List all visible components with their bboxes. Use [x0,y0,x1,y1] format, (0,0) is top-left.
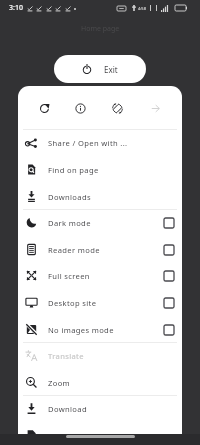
staticText: Translate [48,351,84,361]
button[interactable]: Reader mode [18,236,182,263]
button[interactable]: Full screen [18,262,182,289]
button[interactable]: Dark mode [18,209,182,236]
button[interactable]: Exit [54,55,146,83]
staticText: Download [48,404,87,414]
button[interactable]: Zoom [18,369,182,396]
button[interactable]: Rotate screen [99,86,136,129]
staticText: Reader mode [48,245,100,255]
staticText: Desktop site [48,298,97,308]
staticText: 4:58 [138,6,146,11]
button[interactable]: Translate [18,342,182,369]
staticText: Downloads [48,192,91,202]
button[interactable]: Desktop site [18,289,182,316]
staticText: No images mode [48,325,114,335]
staticText: 3:10 [9,3,23,13]
staticText: Exit [104,64,118,75]
button[interactable]: Downloads [18,183,182,210]
button[interactable]: Refresh [26,86,63,129]
button[interactable]: Find on page [18,156,182,183]
button[interactable]: Forward [137,86,174,129]
button[interactable]: Download [18,395,182,422]
staticText: Home page [81,24,120,34]
staticText: Share / Open with ... [48,138,128,148]
staticText: Zoom [48,378,71,388]
button[interactable]: Share / Open with ... [18,129,182,156]
staticText: Full screen [48,271,90,281]
staticText: Find on page [48,165,99,175]
button[interactable]: No images mode [18,316,182,343]
button[interactable]: Page info [62,86,99,129]
button[interactable]: Save as PDF [18,422,182,434]
staticText: Dark mode [48,218,91,228]
